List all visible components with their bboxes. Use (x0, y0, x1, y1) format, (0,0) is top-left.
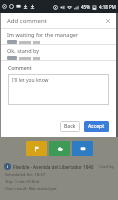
staticText: i (7, 164, 9, 169)
staticText: User result: Not visited yet (5, 186, 57, 192)
button[interactable]: Ok, stand by (1, 45, 116, 60)
button[interactable]: Upload (49, 141, 70, 156)
button[interactable]: Accept (84, 121, 109, 132)
staticText: 4:18 PM (99, 4, 116, 10)
button[interactable]: I'll let you know (8, 74, 109, 105)
button[interactable]: Close (103, 16, 112, 25)
button[interactable]: Comment (72, 141, 93, 156)
staticText: Comment (8, 65, 32, 72)
staticText: Scheduled for: 18:37 (5, 172, 46, 178)
staticText: Add comment (7, 17, 47, 25)
staticText: Back (64, 123, 76, 130)
staticText: Used by (99, 164, 115, 169)
staticText: Accept (88, 123, 105, 130)
staticText: Flexible - Avenida del Libertador 1840 (13, 164, 99, 170)
staticText: I'll let you know (12, 77, 49, 84)
staticText: 45% (81, 4, 90, 10)
staticText: Ok, stand by (7, 47, 40, 54)
button[interactable]: Flag (26, 141, 47, 156)
button[interactable]: Back (60, 121, 80, 132)
staticText: Trip: 1 min (0 Km) (5, 179, 40, 185)
staticText: Im waiting for the manager (7, 31, 79, 38)
button[interactable]: Im waiting for the manager (1, 29, 116, 44)
